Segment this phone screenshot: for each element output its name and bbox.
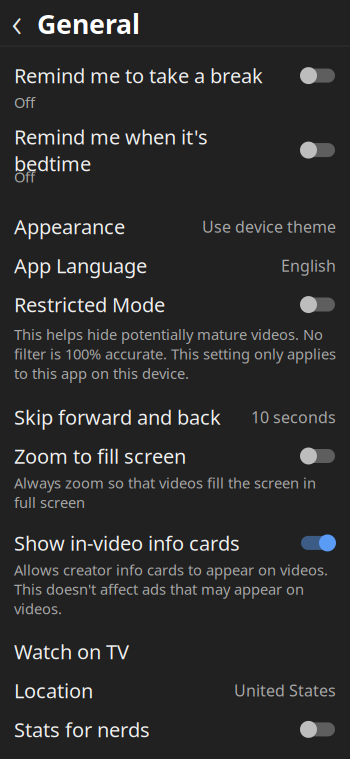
- staticText: Remind me when it's bedtime: [14, 123, 208, 177]
- staticText: Always zoom so that videos fill the scre…: [14, 473, 316, 512]
- staticText: Off: [14, 93, 35, 112]
- staticText: Skip forward and back: [14, 404, 221, 430]
- button[interactable]: Restricted Mode: [0, 294, 350, 316]
- button[interactable]: Appearance: [0, 216, 350, 238]
- staticText: Remind me to take a break: [14, 62, 263, 89]
- button[interactable]: Remind me to take a break: [0, 65, 350, 112]
- button[interactable]: Show in-video info cards: [0, 532, 350, 618]
- button[interactable]: Stats for nerds: [0, 718, 350, 740]
- staticText: Use device theme: [202, 216, 336, 237]
- staticText: Off: [14, 167, 35, 187]
- button[interactable]: Watch on TV: [0, 640, 350, 662]
- staticText: Watch on TV: [14, 638, 129, 665]
- staticText: Stats for nerds: [14, 716, 150, 743]
- button[interactable]: Remind me when it's bedtime: [0, 139, 350, 187]
- staticText: Appearance: [14, 213, 125, 240]
- staticText: Location: [14, 677, 93, 704]
- staticText: Zoom to fill screen: [14, 443, 186, 469]
- button[interactable]: Skip forward and back: [0, 406, 350, 428]
- staticText: English: [281, 255, 336, 276]
- staticText: Allows creator info cards to appear on v…: [14, 560, 328, 618]
- button[interactable]: App Language: [0, 255, 350, 277]
- staticText: Restricted Mode: [14, 291, 165, 318]
- button[interactable]: Location: [0, 679, 350, 701]
- staticText: ‹: [11, 0, 22, 48]
- staticText: This helps hide potentially mature video…: [14, 325, 336, 383]
- staticText: Show in-video info cards: [14, 530, 240, 556]
- staticText: United States: [234, 680, 336, 701]
- staticText: App Language: [14, 252, 147, 279]
- staticText: General: [37, 6, 140, 41]
- button[interactable]: Zoom to fill screen: [0, 445, 350, 512]
- staticText: 10 seconds: [251, 406, 336, 428]
- button[interactable]: Back: [0, 2, 34, 46]
